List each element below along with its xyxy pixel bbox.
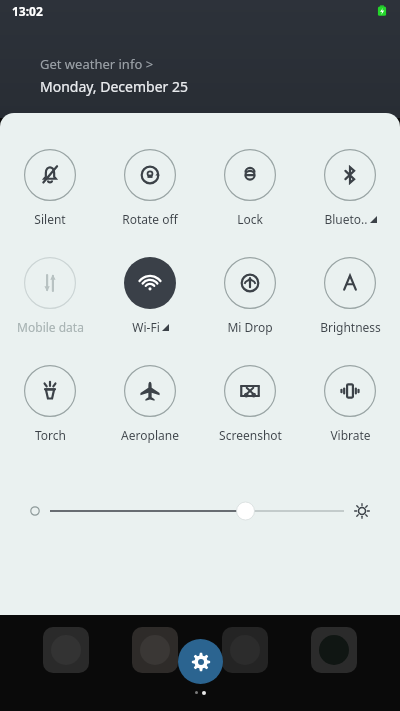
button[interactable]: Brightness slider (30, 491, 370, 531)
staticText: Silent (34, 211, 66, 227)
button[interactable]: Brightness (300, 255, 400, 337)
button[interactable]: Mi Drop (200, 255, 300, 337)
button[interactable]: Rotate off (100, 147, 200, 229)
staticText: Vibrate (330, 427, 371, 443)
button[interactable]: Mobile data (0, 255, 100, 337)
staticText: Monday, December 25 (40, 77, 189, 96)
button[interactable]: Aeroplane (100, 363, 200, 445)
button[interactable]: Blueto.. (300, 147, 400, 229)
button[interactable]: App (311, 627, 357, 673)
button[interactable]: Get weather info > (40, 55, 154, 73)
staticText: Wi-Fi (132, 319, 160, 335)
staticText: Torch (35, 427, 66, 443)
button[interactable]: Lock (200, 147, 300, 229)
button[interactable]: Vibrate (300, 363, 400, 445)
button[interactable]: App (43, 627, 89, 673)
staticText: Aeroplane (121, 427, 179, 443)
staticText: 13:02 (12, 3, 43, 19)
staticText: Brightness (320, 319, 381, 335)
button[interactable]: Screenshot (200, 363, 300, 445)
button[interactable]: Settings (178, 639, 223, 684)
staticText: Rotate off (122, 211, 178, 227)
staticText: Mobile data (17, 319, 84, 335)
staticText: Screenshot (219, 427, 282, 443)
button[interactable]: App (222, 627, 268, 673)
staticText: Lock (237, 211, 263, 227)
button[interactable]: Torch (0, 363, 100, 445)
staticText: Blueto.. (324, 211, 368, 227)
button[interactable]: Silent (0, 147, 100, 229)
button[interactable]: Wi-Fi (100, 255, 200, 337)
staticText: Mi Drop (227, 319, 273, 335)
button[interactable]: App (132, 627, 178, 673)
